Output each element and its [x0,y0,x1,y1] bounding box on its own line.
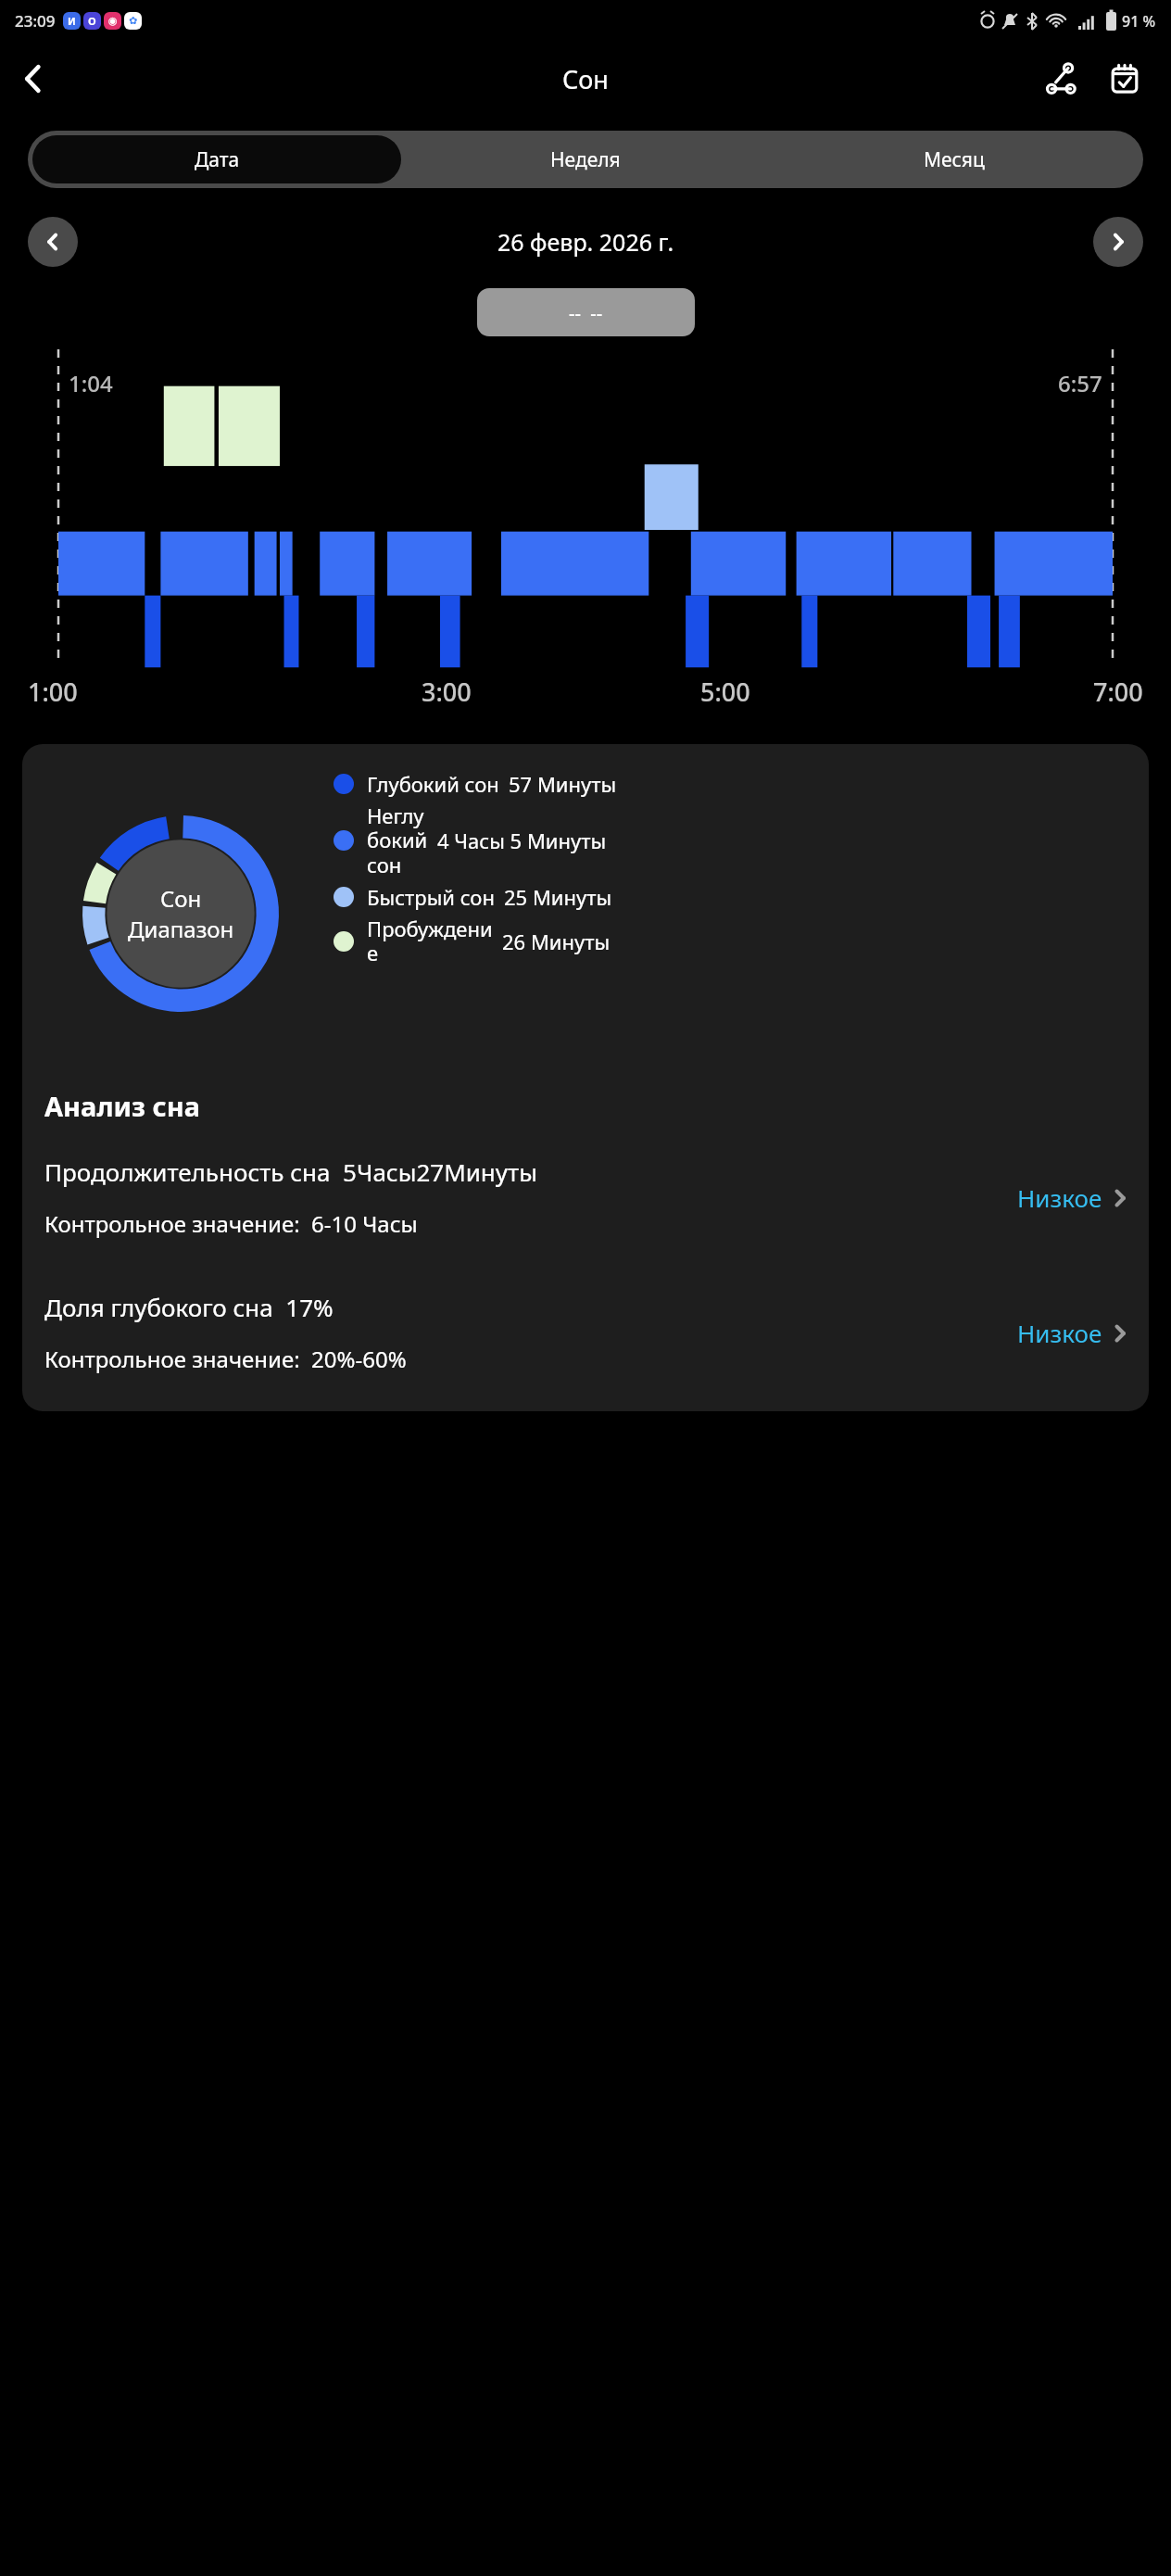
staticText: Контрольное значение: 20%-60% [44,1344,407,1374]
staticText: Пробуждени е [367,915,493,967]
staticText: 6:57 [1058,368,1102,398]
staticText: -- -- [569,300,603,325]
staticText: Доля глубокого сна 17% [44,1291,334,1323]
button[interactable]: Неглу бокий сон [334,802,1134,879]
button[interactable]: Share [1038,55,1086,103]
staticText: ✿ [129,15,138,27]
staticText: Неглу бокий сон [367,802,428,879]
button[interactable]: -- -- [477,288,695,336]
staticText: ◉ [108,15,118,27]
staticText: Сон [562,62,609,96]
staticText: 57 Минуты [509,770,617,798]
button[interactable]: Next day [1093,217,1143,267]
button[interactable]: Доля глубокого сна 17% [28,1291,1143,1374]
button[interactable]: Продолжительность сна 5Часы27Минуты [28,1155,1143,1239]
button[interactable]: Previous day [28,217,78,267]
button[interactable]: Глубокий сон [334,770,1134,798]
staticText: 25 Минуты [504,883,612,911]
staticText: 3:00 [422,675,472,709]
button[interactable]: Back [7,53,59,105]
staticText: Низкое [1017,1317,1102,1349]
staticText: Диапазон [128,914,234,944]
staticText: Дата [195,146,240,173]
button[interactable]: Быстрый сон [334,883,1134,911]
staticText: Глубокий сон [367,770,499,798]
staticText: Анализ сна [44,1088,200,1124]
staticText: 1:04 [69,368,113,398]
staticText: Контрольное значение: 6-10 Часы [44,1208,418,1239]
staticText: 1:00 [28,675,78,709]
staticText: Неделя [550,146,621,173]
staticText: 7:00 [1093,675,1143,709]
button[interactable]: Неделя [401,135,770,183]
button[interactable]: Пробуждени е [334,915,1134,967]
staticText: 26 февр. 2026 г. [497,226,674,258]
staticText: И [68,14,76,28]
staticText: 23:09 [15,10,56,32]
staticText: Быстрый сон [367,883,495,911]
staticText: Низкое [1017,1181,1102,1214]
staticText: 26 Минуты [502,928,611,955]
staticText: 4 Часы 5 Минуты [437,827,607,854]
staticText: Продолжительность сна 5Часы27Минуты [44,1155,537,1188]
staticText: 91 % [1122,11,1156,32]
button[interactable]: Месяц [770,135,1139,183]
staticText: Месяц [924,146,985,173]
staticText: Сон [160,883,202,914]
staticText: O [88,14,96,28]
button[interactable]: Calendar [1101,55,1149,103]
staticText: 5:00 [700,675,750,709]
button[interactable]: Дата [32,135,401,183]
